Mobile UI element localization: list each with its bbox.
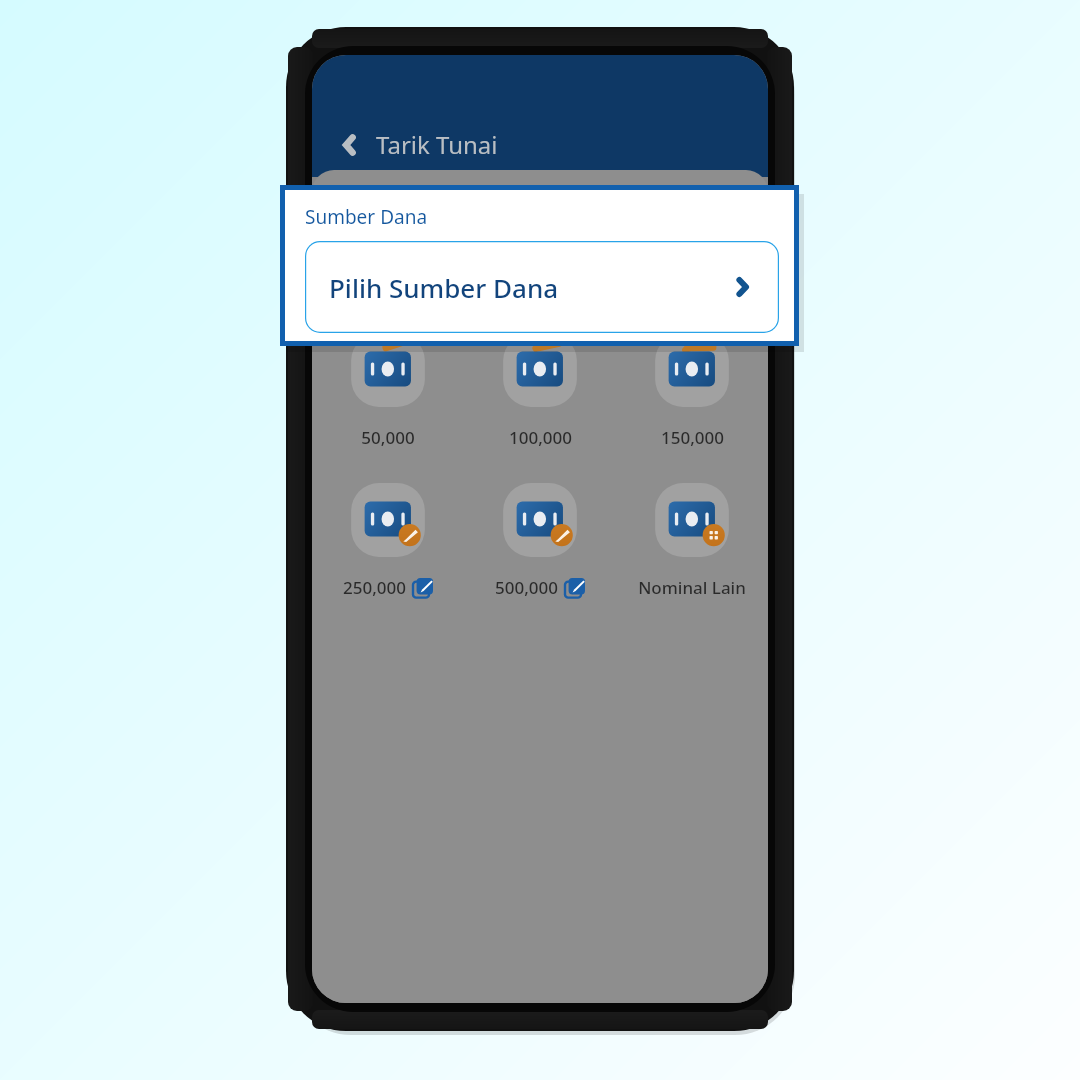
staticText: 150,000: [661, 426, 724, 449]
button[interactable]: 150,000: [616, 329, 768, 449]
staticText: 100,000: [509, 426, 572, 449]
staticText: Tarik Tunai: [376, 128, 498, 161]
staticText: Pilih Sumber Dana: [329, 270, 729, 305]
button[interactable]: 500,000: [464, 479, 616, 599]
staticText: Pilihan Nominal (IDR): [338, 264, 562, 293]
button[interactable]: Back: [332, 124, 502, 165]
staticText: Nominal Lain: [638, 576, 746, 599]
button[interactable]: 50,000: [312, 329, 464, 449]
staticText: 50,000: [361, 426, 415, 449]
button[interactable]: 100,000: [464, 329, 616, 449]
button[interactable]: 250,000: [312, 479, 464, 599]
staticText: Sumber Dana: [305, 204, 428, 230]
button[interactable]: Nominal Lain: [616, 479, 768, 599]
button[interactable]: Pilih Sumber Dana: [305, 241, 779, 333]
staticText: 500,000: [495, 576, 558, 599]
staticText: 250,000: [343, 576, 406, 599]
